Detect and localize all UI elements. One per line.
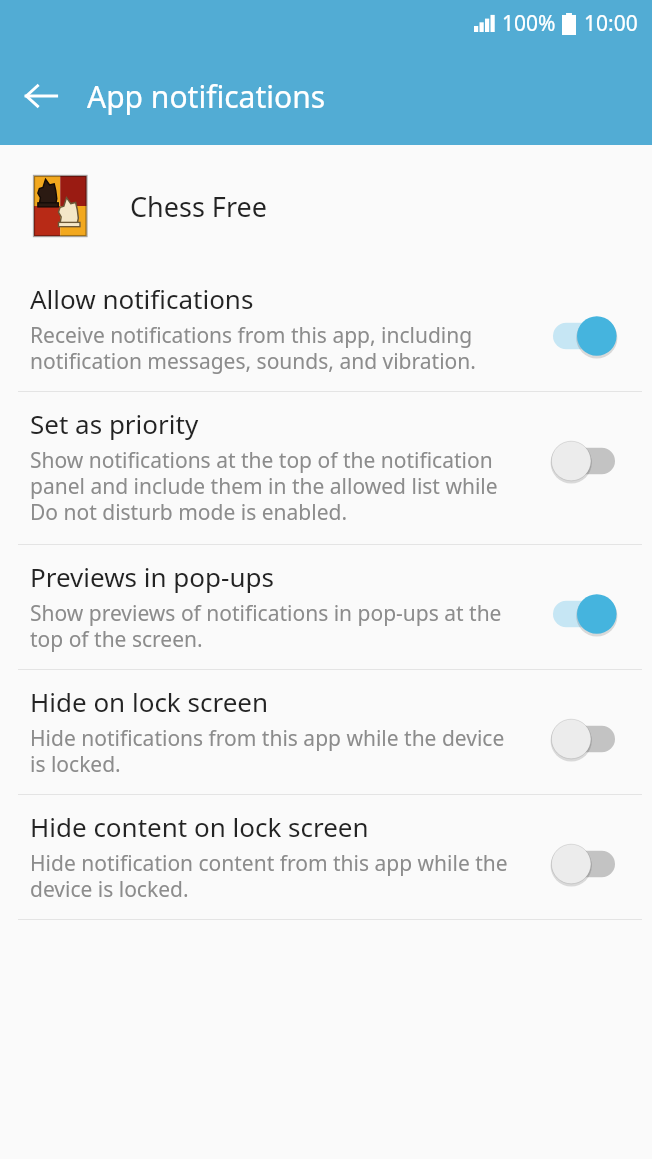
staticText: Chess Free <box>130 188 267 225</box>
staticText: Hide notification content from this app … <box>30 849 512 904</box>
staticText: Allow notifications <box>30 281 254 316</box>
staticText: 100% <box>502 9 556 38</box>
staticText: 10:00 <box>584 9 638 38</box>
staticText: Hide notifications from this app while t… <box>30 724 512 779</box>
button[interactable]: Hide content on lock screen <box>0 795 652 919</box>
button[interactable]: Allow notifications <box>0 267 652 391</box>
button[interactable]: Hide on lock screen <box>0 670 652 794</box>
staticText: Hide on lock screen <box>30 684 269 719</box>
button[interactable]: Chess Free <box>0 145 652 267</box>
button[interactable]: Set as priority <box>0 392 652 544</box>
button[interactable]: Hide on lock screen off <box>549 716 619 762</box>
staticText: Receive notifications from this app, inc… <box>30 321 512 376</box>
staticText: Show previews of notifications in pop-up… <box>30 599 512 654</box>
button[interactable]: Hide content on lock screen off <box>549 841 619 887</box>
button[interactable]: Allow notifications on <box>549 313 619 359</box>
staticText: App notifications <box>87 76 326 117</box>
button[interactable]: Previews in pop-ups on <box>549 591 619 637</box>
button[interactable]: Previews in pop-ups <box>0 545 652 669</box>
staticText: Show notifications at the top of the not… <box>30 446 512 527</box>
button[interactable]: Back <box>10 65 72 127</box>
button[interactable]: Set as priority off <box>549 438 619 484</box>
staticText: Set as priority <box>30 406 199 441</box>
staticText: Previews in pop-ups <box>30 559 274 594</box>
staticText: Hide content on lock screen <box>30 809 369 844</box>
